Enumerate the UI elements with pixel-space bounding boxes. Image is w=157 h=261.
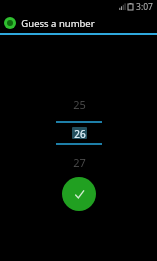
staticText: 3:07 [136, 1, 153, 13]
staticText: 26 [74, 127, 86, 139]
button[interactable]: Confirm guess [62, 177, 96, 211]
staticText: 27 [73, 155, 86, 170]
staticText: 25 [73, 97, 86, 112]
staticText: Guess a number [21, 17, 95, 30]
button[interactable]: Guess a number [0, 13, 157, 33]
button[interactable]: Number picker, value 26 [56, 96, 102, 170]
